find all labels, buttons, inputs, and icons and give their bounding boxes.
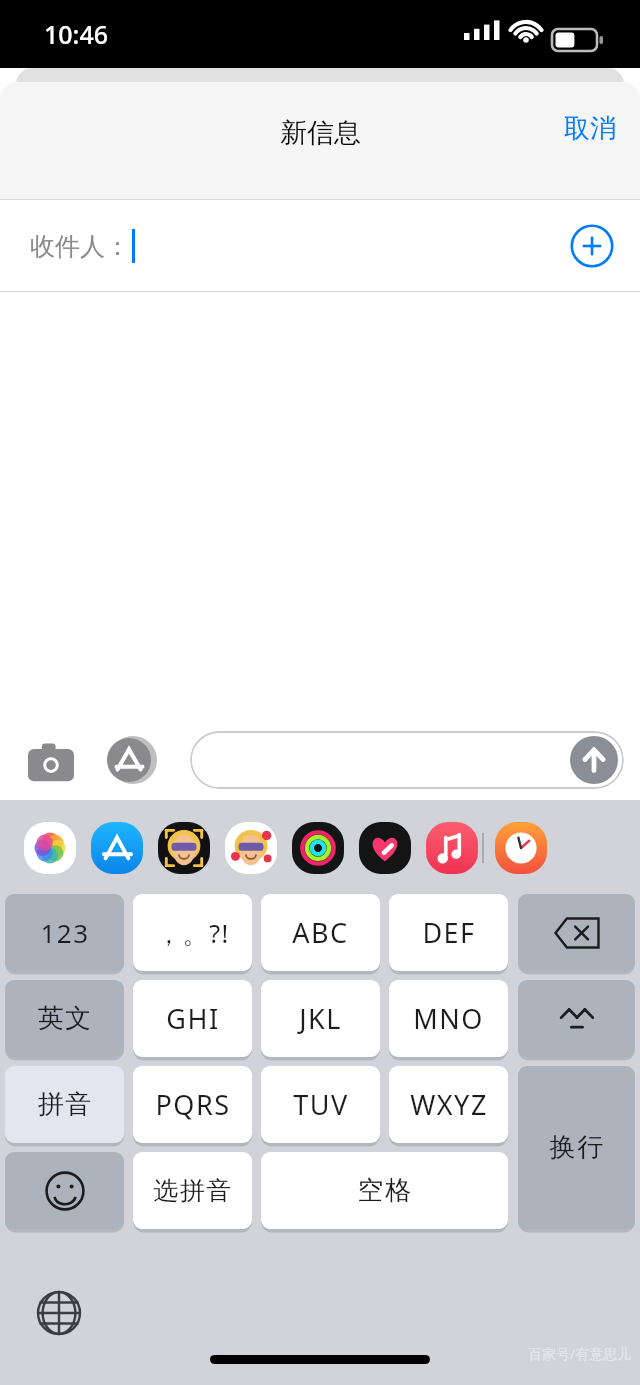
- button[interactable]: App Store: [94, 725, 164, 795]
- staticText: 新信息: [280, 116, 361, 150]
- staticText: 英文: [37, 1002, 92, 1035]
- staticText: WXYZ: [410, 1086, 488, 1123]
- button[interactable]: PQRS: [133, 1066, 252, 1143]
- button[interactable]: Kaomoji: [518, 980, 635, 1057]
- button[interactable]: App 5: [355, 820, 415, 876]
- button[interactable]: Send: [190, 731, 624, 789]
- button[interactable]: Emoji: [5, 1152, 124, 1229]
- button[interactable]: App 0: [20, 820, 80, 876]
- button[interactable]: DEF: [389, 894, 508, 971]
- staticText: 选拼音: [153, 1175, 233, 1206]
- staticText: 拼音: [37, 1088, 92, 1121]
- button[interactable]: 空格: [261, 1152, 508, 1229]
- staticText: 空格: [357, 1174, 412, 1207]
- staticText: DEF: [422, 914, 476, 951]
- staticText: ABC: [292, 914, 349, 951]
- button[interactable]: MNO: [389, 980, 508, 1057]
- button[interactable]: App 4: [288, 820, 348, 876]
- button[interactable]: GHI: [133, 980, 252, 1057]
- button[interactable]: App 6: [422, 820, 482, 876]
- staticText: 取消: [564, 112, 616, 145]
- button[interactable]: 换行: [518, 1066, 635, 1229]
- button[interactable]: TUV: [261, 1066, 380, 1143]
- button[interactable]: App 2: [154, 820, 214, 876]
- staticText: 123: [40, 915, 90, 950]
- staticText: TUV: [293, 1086, 349, 1123]
- staticText: PQRS: [155, 1086, 231, 1123]
- button[interactable]: Camera: [16, 725, 86, 795]
- staticText: 百家号/有意思儿: [528, 1344, 632, 1363]
- button[interactable]: JKL: [261, 980, 380, 1057]
- button[interactable]: 取消: [550, 104, 630, 153]
- button[interactable]: 123: [5, 894, 124, 971]
- staticText: MNO: [413, 1000, 484, 1037]
- button[interactable]: App 7: [491, 820, 551, 876]
- button[interactable]: 选拼音: [133, 1152, 252, 1229]
- staticText: JKL: [299, 1000, 342, 1037]
- button[interactable]: App 3: [221, 820, 281, 876]
- button[interactable]: Switch keyboard: [30, 1284, 88, 1342]
- staticText: 收件人：: [30, 231, 130, 262]
- button[interactable]: App 1: [87, 820, 147, 876]
- button[interactable]: Delete: [518, 894, 635, 971]
- button[interactable]: ，。?!: [133, 894, 252, 971]
- staticText: GHI: [166, 1000, 220, 1037]
- button[interactable]: WXYZ: [389, 1066, 508, 1143]
- button[interactable]: Add contact: [564, 218, 620, 274]
- button[interactable]: Send: [568, 734, 620, 786]
- staticText: 换行: [549, 1131, 604, 1164]
- staticText: ，。?!: [156, 916, 230, 950]
- button[interactable]: 拼音: [5, 1066, 124, 1143]
- button[interactable]: 英文: [5, 980, 124, 1057]
- staticText: 10:46: [44, 17, 109, 51]
- button[interactable]: ABC: [261, 894, 380, 971]
